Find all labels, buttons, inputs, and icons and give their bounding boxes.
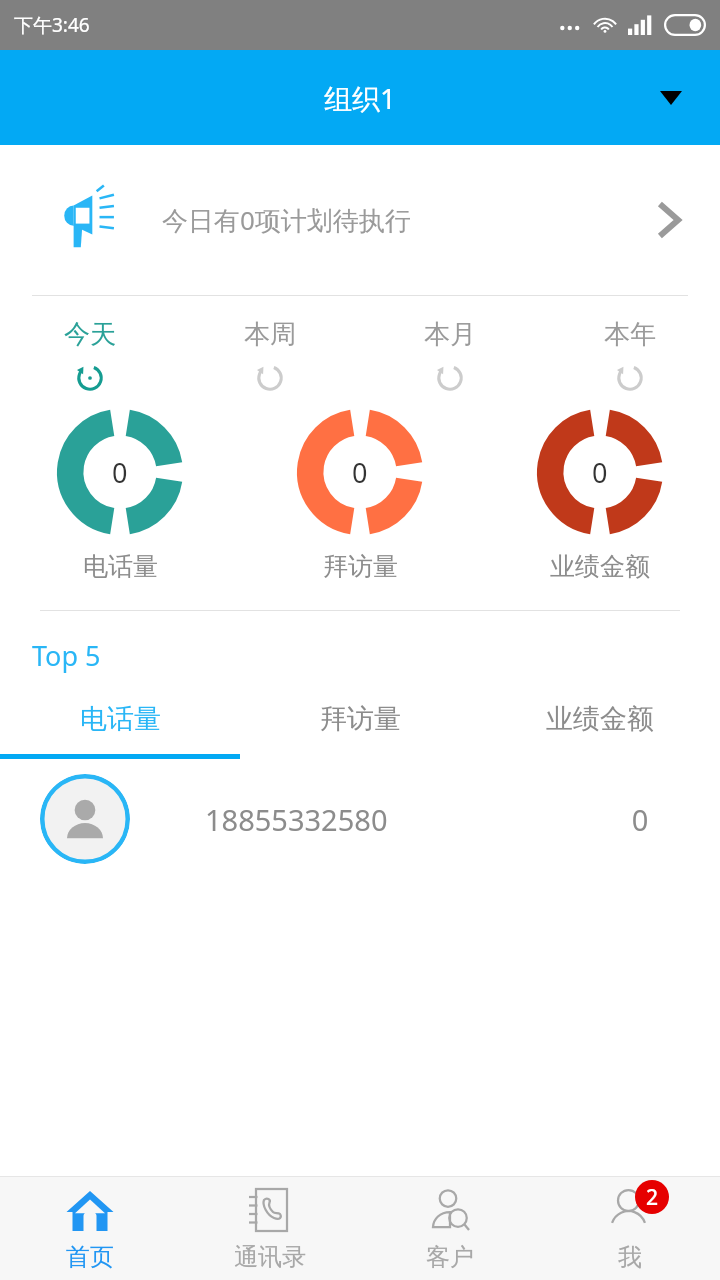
- staticText: 0: [592, 454, 608, 491]
- button[interactable]: 今日有0项计划待执行: [0, 145, 720, 295]
- staticText: 今日有0项计划待执行: [162, 202, 411, 238]
- staticText: 0: [112, 454, 128, 491]
- staticText: 拜访量: [323, 551, 398, 582]
- staticText: 18855332580: [205, 800, 388, 839]
- staticText: 0: [560, 800, 720, 839]
- button[interactable]: Home: [0, 1177, 180, 1280]
- other: Customers: [425, 1186, 475, 1236]
- button[interactable]: 今天: [0, 318, 180, 395]
- button[interactable]: 拜访量: [240, 702, 480, 736]
- staticText: 我: [618, 1242, 642, 1272]
- button[interactable]: 组织1: [0, 50, 720, 145]
- button[interactable]: 本年: [540, 318, 720, 395]
- other: Profile: [605, 1186, 655, 1236]
- button[interactable]: 本周: [180, 318, 360, 395]
- staticText: 本月: [424, 318, 476, 351]
- button[interactable]: 0: [0, 409, 240, 582]
- button[interactable]: 0: [480, 409, 720, 582]
- staticText: 客户: [426, 1242, 474, 1272]
- staticText: 组织1: [324, 79, 397, 117]
- other: Home: [65, 1186, 115, 1236]
- staticText: Top 5: [32, 637, 101, 674]
- staticText: 今天: [64, 318, 116, 351]
- button[interactable]: Select organization: [656, 83, 686, 113]
- button[interactable]: 电话量: [0, 702, 240, 736]
- staticText: 本年: [604, 318, 656, 351]
- button[interactable]: 本月: [360, 318, 540, 395]
- staticText: 0: [352, 454, 368, 491]
- staticText: 业绩金额: [546, 702, 654, 736]
- staticText: 本周: [244, 318, 296, 351]
- staticText: 电话量: [83, 551, 158, 582]
- other: Contacts: [245, 1186, 295, 1236]
- button[interactable]: Contacts: [180, 1177, 360, 1280]
- button[interactable]: 业绩金额: [480, 702, 720, 736]
- staticText: 首页: [66, 1242, 114, 1272]
- staticText: 2: [646, 1183, 659, 1212]
- button[interactable]: Customers: [360, 1177, 540, 1280]
- staticText: 通讯录: [234, 1242, 306, 1272]
- button[interactable]: 18855332580: [0, 759, 720, 879]
- staticText: 拜访量: [320, 702, 401, 736]
- button[interactable]: Profile: [540, 1177, 720, 1280]
- staticText: 电话量: [80, 702, 161, 736]
- staticText: 下午3:46: [14, 12, 90, 38]
- button[interactable]: 0: [240, 409, 480, 582]
- staticText: 业绩金额: [550, 551, 650, 582]
